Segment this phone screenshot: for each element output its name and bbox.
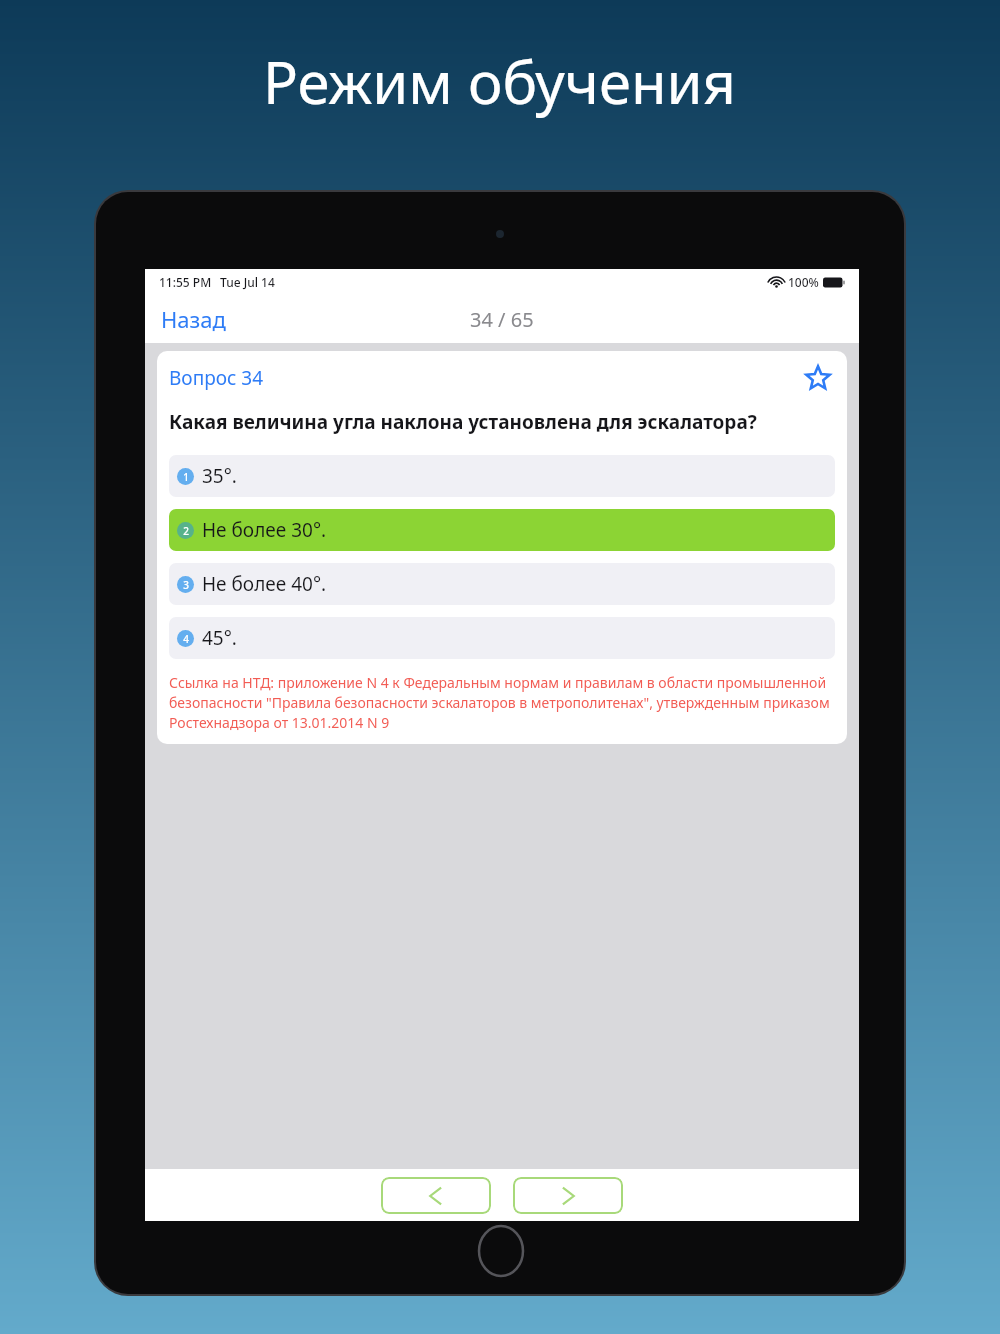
button[interactable]: Добавить в избранное <box>801 361 835 395</box>
button[interactable]: 4 <box>169 617 835 659</box>
staticText: 34 / 65 <box>470 306 534 333</box>
staticText: 1 <box>183 470 189 484</box>
staticText: Назад <box>161 304 226 334</box>
button[interactable]: 1 <box>169 455 835 497</box>
button[interactable]: 3 <box>169 563 835 605</box>
button[interactable]: Назад <box>151 298 236 340</box>
button[interactable]: 2 <box>169 509 835 551</box>
button[interactable]: Следующий вопрос <box>513 1177 623 1214</box>
staticText: Не более 40°. <box>202 571 327 597</box>
staticText: 3 <box>183 578 189 592</box>
staticText: 4 <box>183 632 189 646</box>
staticText: Не более 30°. <box>202 517 327 543</box>
staticText: 11:55 PM <box>159 274 212 290</box>
staticText: 2 <box>183 524 189 538</box>
staticText: Какая величина угла наклона установлена … <box>169 409 757 435</box>
staticText: Ссылка на НТД: приложение N 4 к Федераль… <box>169 673 835 732</box>
button[interactable]: Предыдущий вопрос <box>381 1177 491 1214</box>
staticText: Режим обучения <box>263 42 737 121</box>
staticText: Tue Jul 14 <box>220 274 275 290</box>
staticText: 100% <box>788 274 819 290</box>
staticText: Вопрос 34 <box>169 365 264 391</box>
staticText: 45°. <box>202 625 237 651</box>
staticText: 35°. <box>202 463 237 489</box>
